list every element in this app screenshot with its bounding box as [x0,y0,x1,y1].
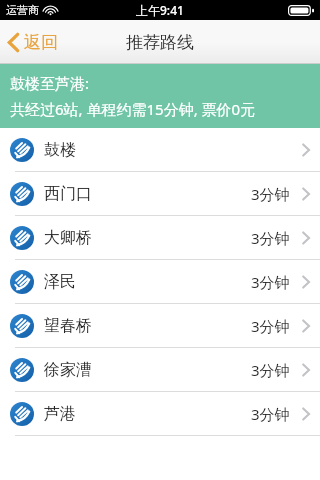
staticText: 3分钟 [251,272,290,292]
staticText: 共经过6站, 单程约需15分钟, 票价0元 [10,99,256,119]
staticText: 芦港 [44,404,76,424]
staticText: 徐家漕 [44,360,92,380]
staticText: 西门口 [44,184,92,204]
staticText: 3分钟 [251,184,290,204]
staticText: 望春桥 [44,316,92,336]
staticText: 运营商 [6,3,39,17]
button[interactable]: 泽民 [0,260,320,303]
button[interactable]: 芦港 [0,392,320,435]
staticText: 上午9:41 [136,2,184,18]
staticText: 3分钟 [251,404,290,424]
button[interactable]: 鼓楼 [0,128,320,171]
staticText: 鼓楼至芦港: [10,73,90,93]
button[interactable]: 西门口 [0,172,320,215]
button[interactable]: 大卿桥 [0,216,320,259]
button[interactable]: 徐家漕 [0,348,320,391]
staticText: 3分钟 [251,360,290,380]
staticText: 大卿桥 [44,228,92,248]
button[interactable]: 返回 [0,20,70,64]
staticText: 返回 [24,32,58,53]
button[interactable]: 望春桥 [0,304,320,347]
staticText: 推荐路线 [126,32,194,53]
staticText: 鼓楼 [44,140,76,160]
staticText: 3分钟 [251,228,290,248]
staticText: 泽民 [44,272,76,292]
staticText: 3分钟 [251,316,290,336]
